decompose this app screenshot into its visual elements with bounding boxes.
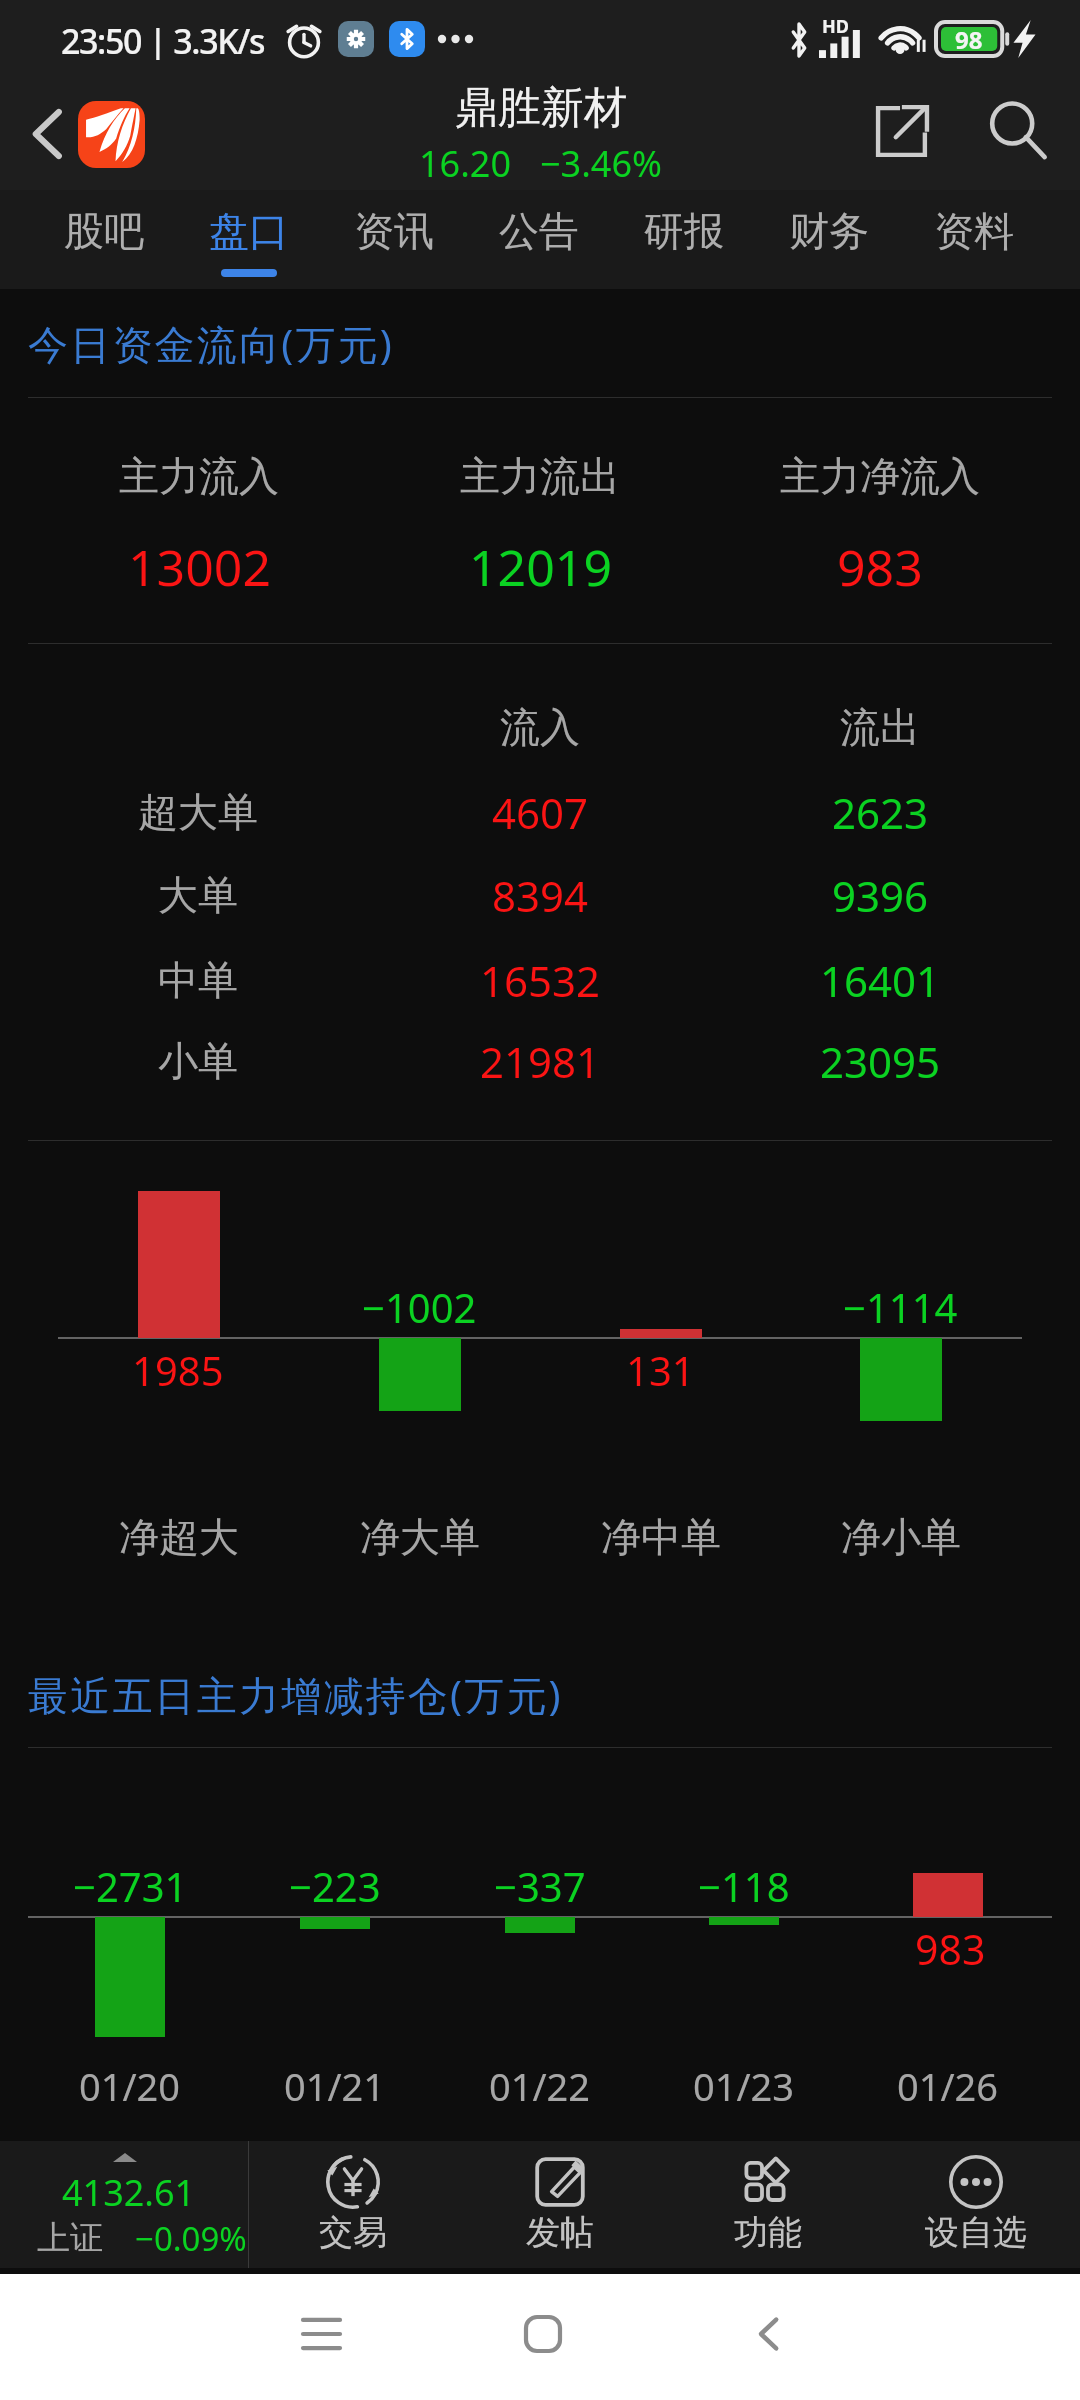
staticText: 今日资金流向(万元) (28, 316, 394, 371)
staticText: 01/22 (489, 2060, 591, 2112)
button[interactable]: 盘口 (177, 190, 321, 289)
staticText: 8394 (492, 867, 589, 924)
button[interactable]: Home (503, 2294, 583, 2374)
button[interactable]: 资料 (902, 190, 1046, 289)
staticText: 2623 (832, 784, 929, 841)
button[interactable]: 资讯 (322, 190, 466, 289)
staticText: 小单 (158, 1036, 238, 1086)
staticText: 鼎胜新材 (455, 81, 627, 135)
staticText: 流出 (840, 702, 920, 752)
button[interactable]: 最近五日主力增减持仓(万元) (28, 1654, 563, 1734)
button[interactable]: Share (862, 91, 942, 171)
staticText: 9396 (832, 867, 929, 924)
staticText: −337 (494, 1859, 586, 1913)
button[interactable]: 4132.61 (0, 2141, 249, 2268)
staticText: 资讯 (354, 206, 434, 256)
staticText: 发帖 (526, 2211, 594, 2254)
staticText: 16401 (820, 952, 941, 1009)
staticText: 16.20 (419, 139, 512, 188)
staticText: 01/23 (693, 2060, 795, 2112)
staticText: 上证 (37, 2217, 103, 2259)
staticText: 研报 (644, 206, 724, 256)
button[interactable]: Recent apps (281, 2294, 361, 2374)
staticText: 最近五日主力增减持仓(万元) (28, 1667, 563, 1722)
staticText: 股吧 (64, 206, 144, 256)
staticText: 净超大 (119, 1512, 239, 1562)
staticText: 流入 (500, 702, 580, 752)
staticText: 大单 (158, 870, 238, 920)
staticText: −118 (698, 1859, 790, 1913)
button[interactable]: 研报 (612, 190, 756, 289)
staticText: 983 (915, 1921, 986, 1977)
staticText: 净中单 (601, 1512, 721, 1562)
staticText: −1114 (843, 1280, 958, 1334)
staticText: −1002 (362, 1280, 477, 1334)
button[interactable]: 财务 (757, 190, 901, 289)
button[interactable]: 发帖 (456, 2141, 664, 2268)
staticText: 12019 (469, 533, 612, 601)
staticText: 13002 (128, 533, 271, 601)
staticText: 01/26 (897, 2060, 999, 2112)
staticText: 4607 (492, 784, 589, 841)
staticText: 21981 (480, 1033, 601, 1090)
staticText: 1985 (132, 1343, 224, 1397)
staticText: −3.46% (540, 139, 662, 188)
staticText: 财务 (789, 206, 869, 256)
staticText: 公告 (499, 206, 579, 256)
staticText: 01/20 (79, 2060, 181, 2112)
button[interactable]: 今日资金流向(万元) (28, 303, 394, 383)
button[interactable]: 股吧 (32, 190, 176, 289)
staticText: 131 (626, 1343, 695, 1397)
staticText: −223 (289, 1859, 381, 1913)
staticText: 983 (837, 533, 923, 601)
staticText: 主力流入 (119, 451, 279, 501)
staticText: 净大单 (360, 1512, 480, 1562)
staticText: 主力流出 (460, 451, 620, 501)
staticText: 主力净流入 (780, 451, 980, 501)
staticText: 16532 (480, 952, 601, 1009)
staticText: 盘口 (209, 206, 289, 256)
button[interactable]: Search (978, 91, 1058, 171)
button[interactable]: Back (8, 99, 78, 169)
staticText: 98 (955, 23, 983, 56)
staticText: 4132.61 (62, 2168, 196, 2217)
button[interactable]: 设自选 (872, 2141, 1080, 2268)
staticText: 超大单 (138, 787, 258, 837)
staticText: −0.09% (135, 2216, 247, 2261)
staticText: 资料 (934, 206, 1014, 256)
staticText: 净小单 (841, 1512, 961, 1562)
staticText: HD (822, 14, 849, 39)
staticText: 23095 (820, 1033, 941, 1090)
staticText: 01/21 (284, 2060, 386, 2112)
staticText: 交易 (319, 2211, 387, 2254)
staticText: 中单 (158, 955, 238, 1005)
button[interactable]: 功能 (664, 2141, 872, 2268)
staticText: −2731 (73, 1859, 188, 1913)
button[interactable]: 公告 (467, 190, 611, 289)
button[interactable]: 交易 (249, 2141, 456, 2268)
staticText: 设自选 (925, 2211, 1027, 2254)
button[interactable]: Eastmoney home (78, 101, 145, 168)
button[interactable]: Back (729, 2294, 809, 2374)
staticText: 23:50 | 3.3K/s (61, 18, 265, 60)
staticText: 功能 (734, 2211, 802, 2254)
